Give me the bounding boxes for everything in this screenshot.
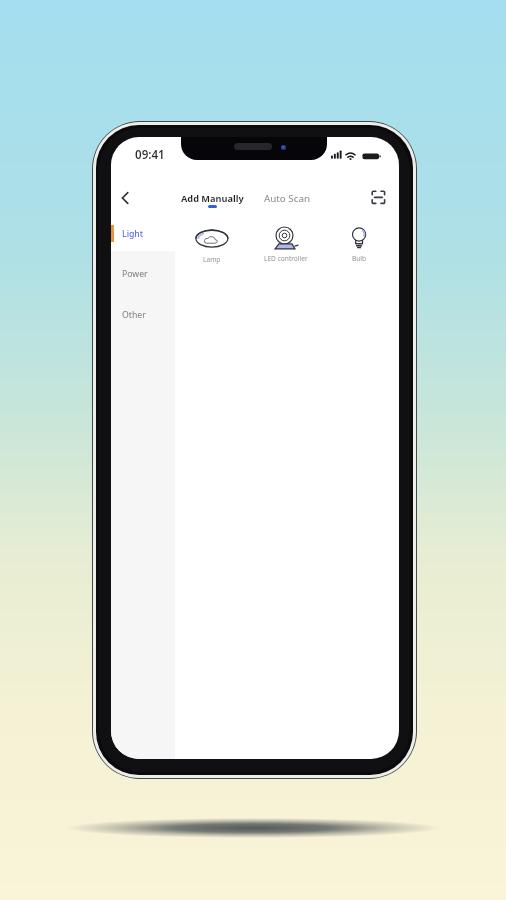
staticText: Power — [122, 268, 148, 280]
staticText: Bulb — [352, 254, 367, 263]
button[interactable]: Light — [111, 217, 175, 251]
staticText: Other — [122, 309, 146, 321]
button[interactable]: Add Manually — [157, 189, 267, 207]
button[interactable]: Power — [111, 257, 175, 291]
staticText: Lamp — [203, 255, 221, 264]
button[interactable] — [183, 219, 241, 269]
staticText: Auto Scan — [264, 192, 310, 205]
button[interactable] — [114, 187, 136, 209]
staticText: LED controller — [264, 254, 308, 263]
button[interactable]: Auto Scan — [237, 189, 337, 207]
staticText: Light — [122, 228, 144, 240]
staticText: Add Manually — [181, 192, 244, 205]
staticText: 09:41 — [135, 147, 165, 163]
button[interactable] — [333, 219, 385, 269]
button[interactable] — [257, 217, 315, 269]
button[interactable]: Other — [111, 298, 175, 332]
button[interactable] — [370, 189, 387, 206]
